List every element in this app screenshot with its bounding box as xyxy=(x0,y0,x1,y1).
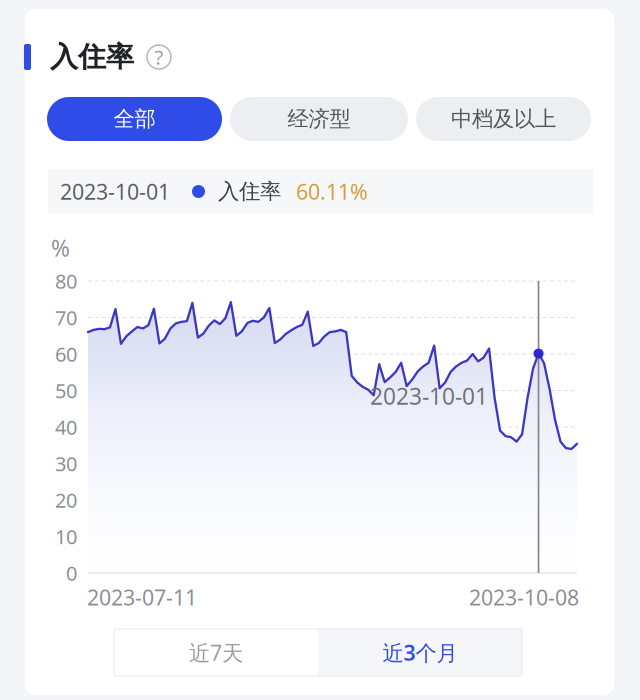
staticText: 2023-10-08 xyxy=(469,583,579,611)
staticText: 80 xyxy=(55,268,77,294)
staticText: 入住率 xyxy=(218,178,281,205)
button[interactable]: 近3个月 xyxy=(318,629,522,676)
staticText: 10 xyxy=(55,523,77,550)
staticText: 2023-07-11 xyxy=(87,583,197,611)
button[interactable]: 中档及以上 xyxy=(416,97,591,141)
button[interactable]: 经济型 xyxy=(230,97,408,141)
staticText: 0 xyxy=(66,560,77,586)
staticText: 2023-10-01 xyxy=(60,177,170,206)
staticText: 60 xyxy=(55,341,77,367)
staticText: 近7天 xyxy=(189,638,243,667)
staticText: 2023-10-01 xyxy=(370,381,488,411)
staticText: 入住率 xyxy=(50,40,134,74)
button[interactable]: 帮助 xyxy=(147,45,171,69)
staticText: 70 xyxy=(55,304,77,331)
staticText: % xyxy=(51,233,70,263)
button[interactable]: 近7天 xyxy=(114,629,318,676)
staticText: 50 xyxy=(55,377,77,404)
staticText: 中档及以上 xyxy=(451,106,556,132)
staticText: 近3个月 xyxy=(382,638,457,667)
staticText: 60.11% xyxy=(296,177,368,206)
staticText: ? xyxy=(154,44,163,70)
staticText: 20 xyxy=(55,487,77,513)
button[interactable]: 全部 xyxy=(47,97,222,141)
staticText: 30 xyxy=(55,450,77,477)
staticText: 经济型 xyxy=(287,106,350,132)
staticText: 40 xyxy=(55,414,77,440)
staticText: 全部 xyxy=(113,106,155,132)
